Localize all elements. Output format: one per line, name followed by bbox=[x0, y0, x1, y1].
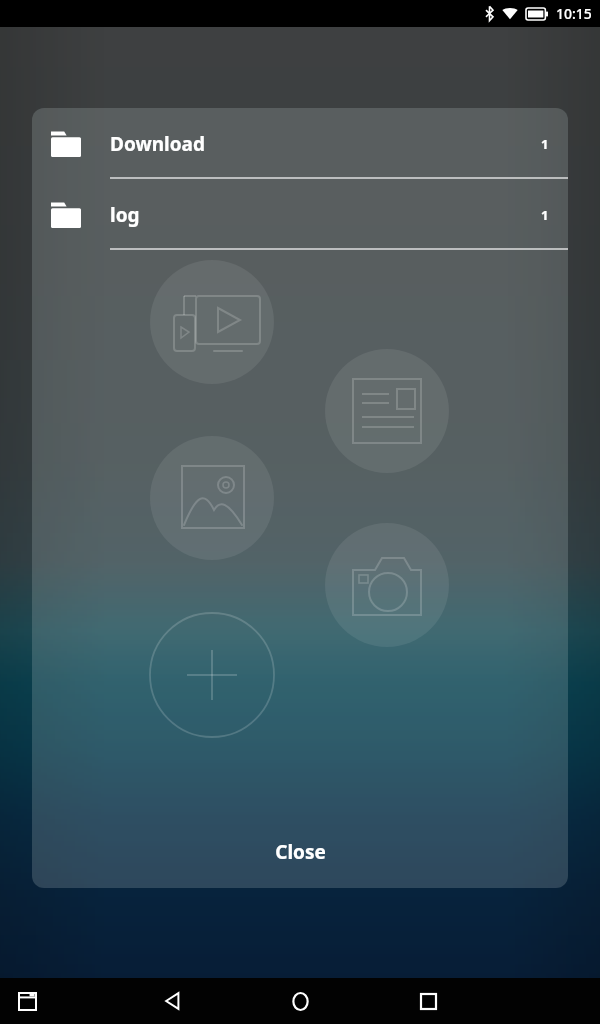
staticText: Download bbox=[110, 131, 205, 157]
staticText: 10:15 bbox=[556, 4, 592, 23]
button[interactable]: Close bbox=[32, 816, 568, 888]
staticText: log bbox=[110, 202, 140, 228]
button[interactable]: Download bbox=[32, 108, 568, 179]
staticText: Close bbox=[275, 839, 326, 865]
button[interactable]: Recents bbox=[411, 984, 445, 1018]
button[interactable]: Home bbox=[283, 984, 317, 1018]
staticText: 1 bbox=[541, 206, 549, 224]
staticText: 1 bbox=[541, 135, 549, 153]
button[interactable]: Window bbox=[10, 984, 44, 1018]
button[interactable]: log bbox=[32, 179, 568, 250]
button[interactable]: Back bbox=[156, 984, 190, 1018]
